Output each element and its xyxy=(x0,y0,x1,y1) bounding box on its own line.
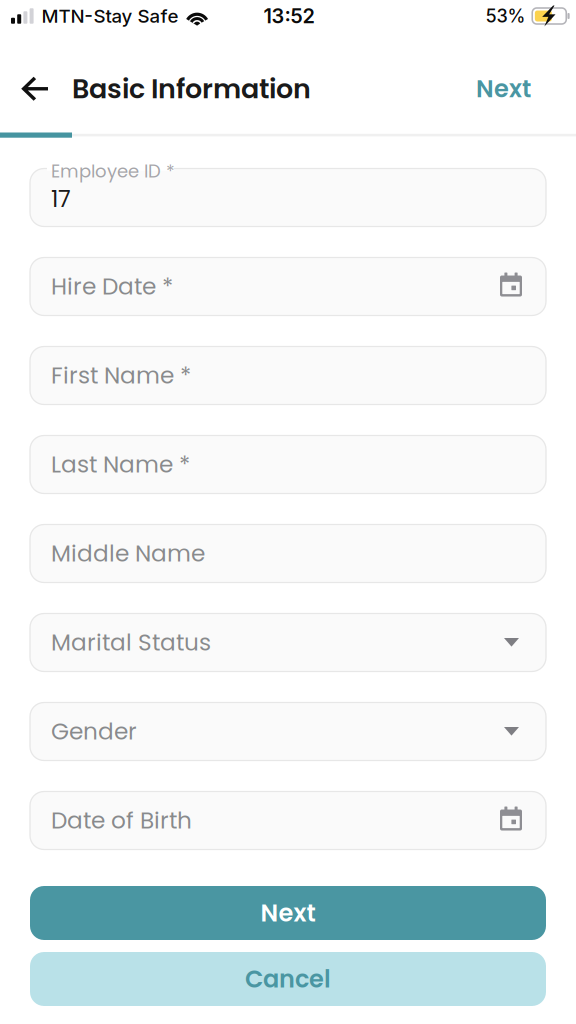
button[interactable]: Last Name * xyxy=(30,435,546,493)
staticText: Date of Birth xyxy=(51,804,192,837)
staticText: Employee ID * xyxy=(51,158,175,184)
staticText: MTN-Stay Safe xyxy=(42,5,179,27)
button[interactable]: 17 xyxy=(30,168,546,226)
button[interactable]: Next xyxy=(452,52,576,125)
staticText: 17 xyxy=(51,183,71,215)
button[interactable]: Gender xyxy=(30,702,546,760)
staticText: Basic Information xyxy=(72,70,311,108)
staticText: Next xyxy=(476,72,531,105)
staticText: Gender xyxy=(51,715,137,748)
staticText: Next xyxy=(260,896,315,930)
button[interactable]: Hire Date * xyxy=(30,257,546,315)
staticText: Middle Name xyxy=(51,537,205,570)
staticText: Cancel xyxy=(245,962,331,996)
staticText: Marital Status xyxy=(51,626,211,659)
button[interactable]: Middle Name xyxy=(30,524,546,582)
staticText: 13:52 xyxy=(263,4,314,28)
button[interactable]: First Name * xyxy=(30,346,546,404)
staticText: First Name * xyxy=(51,359,191,392)
button[interactable]: Date of Birth xyxy=(30,791,546,849)
staticText: Hire Date * xyxy=(51,270,173,303)
staticText: Last Name * xyxy=(51,448,190,481)
staticText: 53% xyxy=(485,5,525,27)
button[interactable]: Next xyxy=(30,886,546,940)
button[interactable]: Cancel xyxy=(30,952,546,1006)
button[interactable]: Marital Status xyxy=(30,613,546,671)
button[interactable]: Back xyxy=(0,59,72,119)
